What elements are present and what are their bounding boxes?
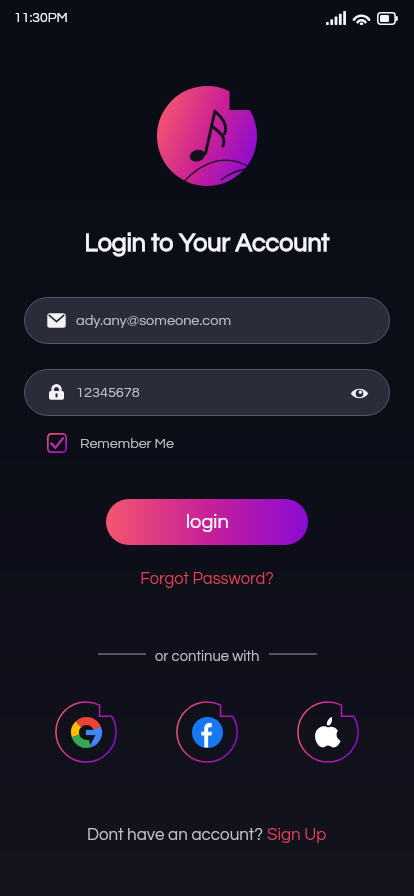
staticText: or continue with (155, 649, 260, 664)
button[interactable]: Sign in with Google (55, 701, 117, 763)
staticText: ady.any@someone.com (76, 313, 232, 328)
button[interactable]: ady.any@someone.com (24, 297, 390, 344)
button[interactable]: login (106, 499, 308, 545)
staticText: 12345678 (76, 385, 140, 400)
staticText: Dont have an account? (87, 826, 267, 844)
staticText: 11:30PM (14, 11, 68, 25)
button[interactable]: Show password (346, 380, 372, 406)
button[interactable]: Sign in with Facebook (176, 701, 238, 763)
button[interactable]: Forgot Password? (0, 570, 414, 587)
staticText: Remember Me (80, 436, 175, 451)
button[interactable]: Sign Up (267, 826, 327, 844)
staticText: Login to Your Account (0, 230, 414, 256)
button[interactable]: Sign in with Apple (297, 701, 359, 763)
button[interactable]: 12345678 (24, 369, 390, 416)
staticText: login (186, 512, 229, 533)
button[interactable]: Remember Me (47, 433, 175, 453)
